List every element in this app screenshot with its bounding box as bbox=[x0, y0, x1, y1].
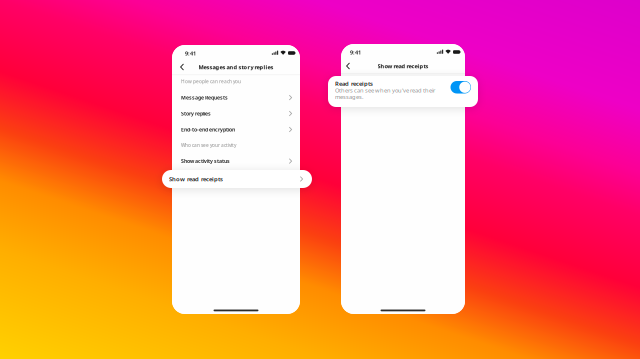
staticText: Others can see when you've read their bbox=[335, 86, 435, 94]
button[interactable]: Message Requests bbox=[172, 90, 300, 106]
staticText: Show read receipts bbox=[169, 175, 223, 183]
button[interactable]: Story replies bbox=[172, 105, 300, 121]
button[interactable]: Show read receipts bbox=[162, 170, 312, 188]
button[interactable]: Read receipts, on bbox=[450, 81, 471, 93]
staticText: Show read receipts bbox=[377, 62, 428, 70]
staticText: Show activity status bbox=[181, 158, 230, 165]
staticText: Story replies bbox=[181, 110, 211, 117]
staticText: End-to-end encryption bbox=[181, 126, 235, 133]
staticText: Read receipts bbox=[335, 79, 373, 87]
button[interactable]: End-to-end encryption bbox=[172, 121, 300, 137]
staticText: 9:41 bbox=[350, 49, 361, 56]
staticText: Who can see your activity bbox=[181, 142, 236, 148]
staticText: 9:41 bbox=[185, 50, 196, 57]
button[interactable]: Show activity status bbox=[172, 153, 300, 169]
staticText: Message Requests bbox=[181, 94, 228, 101]
button[interactable]: Back bbox=[341, 58, 357, 74]
staticText: How people can reach you bbox=[181, 78, 241, 84]
staticText: Messages and story replies bbox=[198, 63, 273, 71]
staticText: messages. bbox=[335, 93, 364, 101]
button[interactable]: Back bbox=[172, 59, 191, 75]
